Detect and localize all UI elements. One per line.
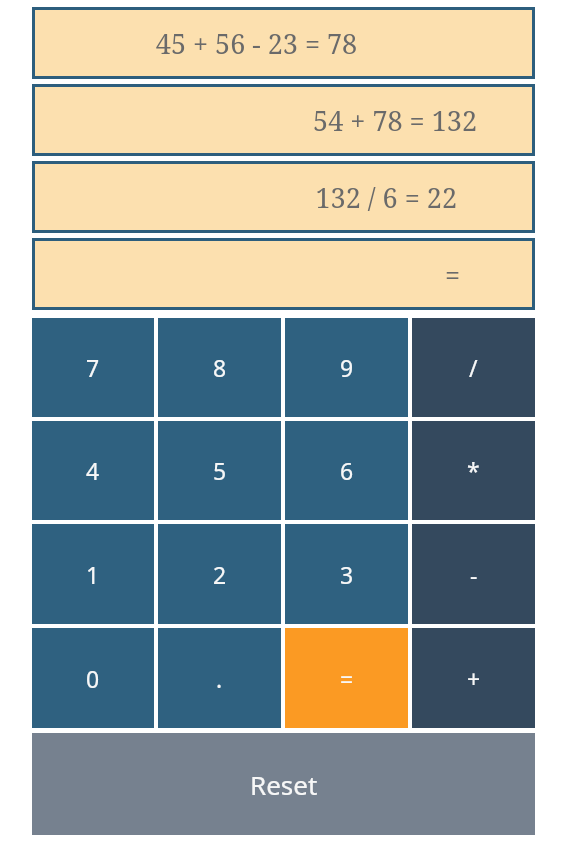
staticText: 3	[340, 559, 354, 590]
staticText: Reset	[250, 767, 318, 802]
button[interactable]: 7	[32, 318, 154, 417]
staticText: =	[44, 256, 460, 293]
button[interactable]: 8	[158, 318, 281, 417]
staticText: 2	[213, 559, 227, 590]
staticText: 6	[340, 455, 354, 486]
button[interactable]: =	[32, 238, 535, 310]
button[interactable]: 9	[285, 318, 408, 417]
button[interactable]: 45 + 56 - 23 = 78	[32, 7, 535, 79]
staticText: 0	[86, 663, 100, 694]
staticText: 5	[213, 455, 227, 486]
button[interactable]: 5	[158, 421, 281, 520]
staticText: /	[469, 352, 478, 383]
staticText: .	[216, 663, 223, 694]
button[interactable]: +	[412, 628, 535, 728]
staticText: 1	[86, 559, 100, 590]
button[interactable]: 3	[285, 524, 408, 624]
button[interactable]: 132 / 6 = 22	[32, 161, 535, 233]
staticText: 7	[86, 352, 100, 383]
staticText: 45 + 56 - 23 = 78	[44, 25, 469, 62]
button[interactable]: 1	[32, 524, 154, 624]
staticText: 8	[213, 352, 227, 383]
button[interactable]: -	[412, 524, 535, 624]
button[interactable]: =	[285, 628, 408, 728]
staticText: -	[470, 559, 478, 590]
button[interactable]: 54 + 78 = 132	[32, 84, 535, 156]
button[interactable]: 4	[32, 421, 154, 520]
button[interactable]: *	[412, 421, 535, 520]
button[interactable]: 2	[158, 524, 281, 624]
button[interactable]: /	[412, 318, 535, 417]
staticText: +	[467, 663, 481, 694]
button[interactable]: 0	[32, 628, 154, 728]
staticText: =	[340, 663, 354, 694]
staticText: 4	[86, 455, 100, 486]
staticText: *	[467, 455, 480, 486]
button[interactable]: .	[158, 628, 281, 728]
staticText: 54 + 78 = 132	[44, 102, 477, 139]
staticText: 132 / 6 = 22	[44, 179, 457, 216]
staticText: 9	[340, 352, 354, 383]
button[interactable]: 6	[285, 421, 408, 520]
button[interactable]: Reset	[32, 733, 535, 835]
